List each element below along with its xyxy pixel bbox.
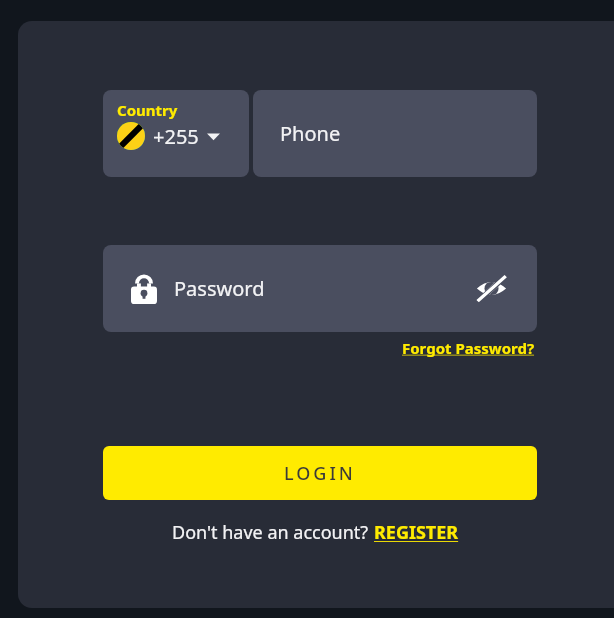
button[interactable]: Forgot Password? <box>400 336 537 360</box>
staticText: Phone <box>280 120 341 147</box>
button[interactable]: Password <box>103 245 537 332</box>
staticText: Forgot Password? <box>402 338 535 358</box>
staticText: Country <box>117 100 178 120</box>
staticText: REGISTER <box>374 520 459 545</box>
button[interactable]: REGISTER <box>373 518 460 547</box>
staticText: Password <box>174 275 265 302</box>
button[interactable]: LOGIN <box>103 446 537 500</box>
button[interactable]: Country <box>103 90 249 177</box>
button[interactable]: Toggle password visibility <box>472 271 511 306</box>
staticText: +255 <box>153 123 199 150</box>
staticText: LOGIN <box>284 461 356 486</box>
button[interactable]: Phone <box>253 90 537 177</box>
staticText: Don't have an account? <box>172 520 373 545</box>
